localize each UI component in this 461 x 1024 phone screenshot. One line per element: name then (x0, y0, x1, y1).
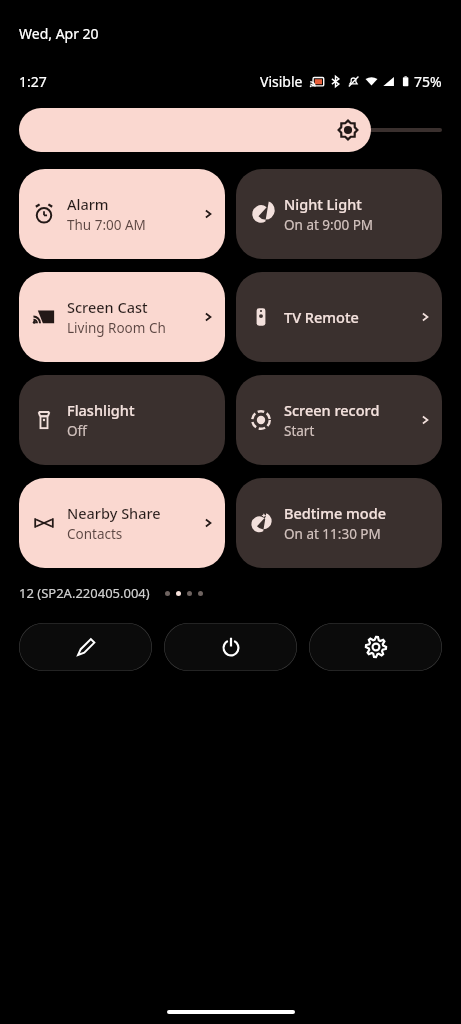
button[interactable]: Edit tiles (19, 623, 152, 671)
staticText: Alarm (67, 194, 109, 214)
staticText: Off (67, 422, 87, 440)
staticText: Thu 7:00 AM (67, 216, 146, 234)
staticText: Wed, Apr 20 (19, 24, 99, 43)
staticText: Visible (260, 72, 303, 91)
staticText: Screen Cast (67, 297, 148, 317)
staticText: 12 (SP2A.220405.004) (19, 584, 150, 602)
button[interactable]: Screen Cast (19, 272, 225, 362)
staticText: Start (284, 422, 315, 440)
button[interactable]: Screen record (236, 375, 442, 465)
button[interactable]: Bedtime mode (236, 478, 442, 568)
button[interactable]: Alarm (19, 169, 225, 259)
staticText: Living Room Ch (67, 319, 166, 337)
staticText: 1:27 (19, 72, 47, 91)
staticText: Night Light (284, 194, 362, 214)
staticText: On at 11:30 PM (284, 525, 381, 543)
button[interactable]: Flashlight (19, 375, 225, 465)
staticText: Bedtime mode (284, 503, 386, 523)
button[interactable]: TV Remote (236, 272, 442, 362)
staticText: TV Remote (284, 307, 359, 327)
button[interactable]: Power (164, 623, 297, 671)
staticText: On at 9:00 PM (284, 216, 374, 234)
staticText: Screen record (284, 400, 380, 420)
staticText: 75% (414, 72, 442, 91)
staticText: Contacts (67, 525, 123, 543)
button[interactable] (19, 108, 442, 152)
staticText: Nearby Share (67, 503, 161, 523)
button[interactable]: Nearby Share (19, 478, 225, 568)
button[interactable]: Night Light (236, 169, 442, 259)
button[interactable]: Settings (309, 623, 442, 671)
staticText: Flashlight (67, 400, 135, 420)
